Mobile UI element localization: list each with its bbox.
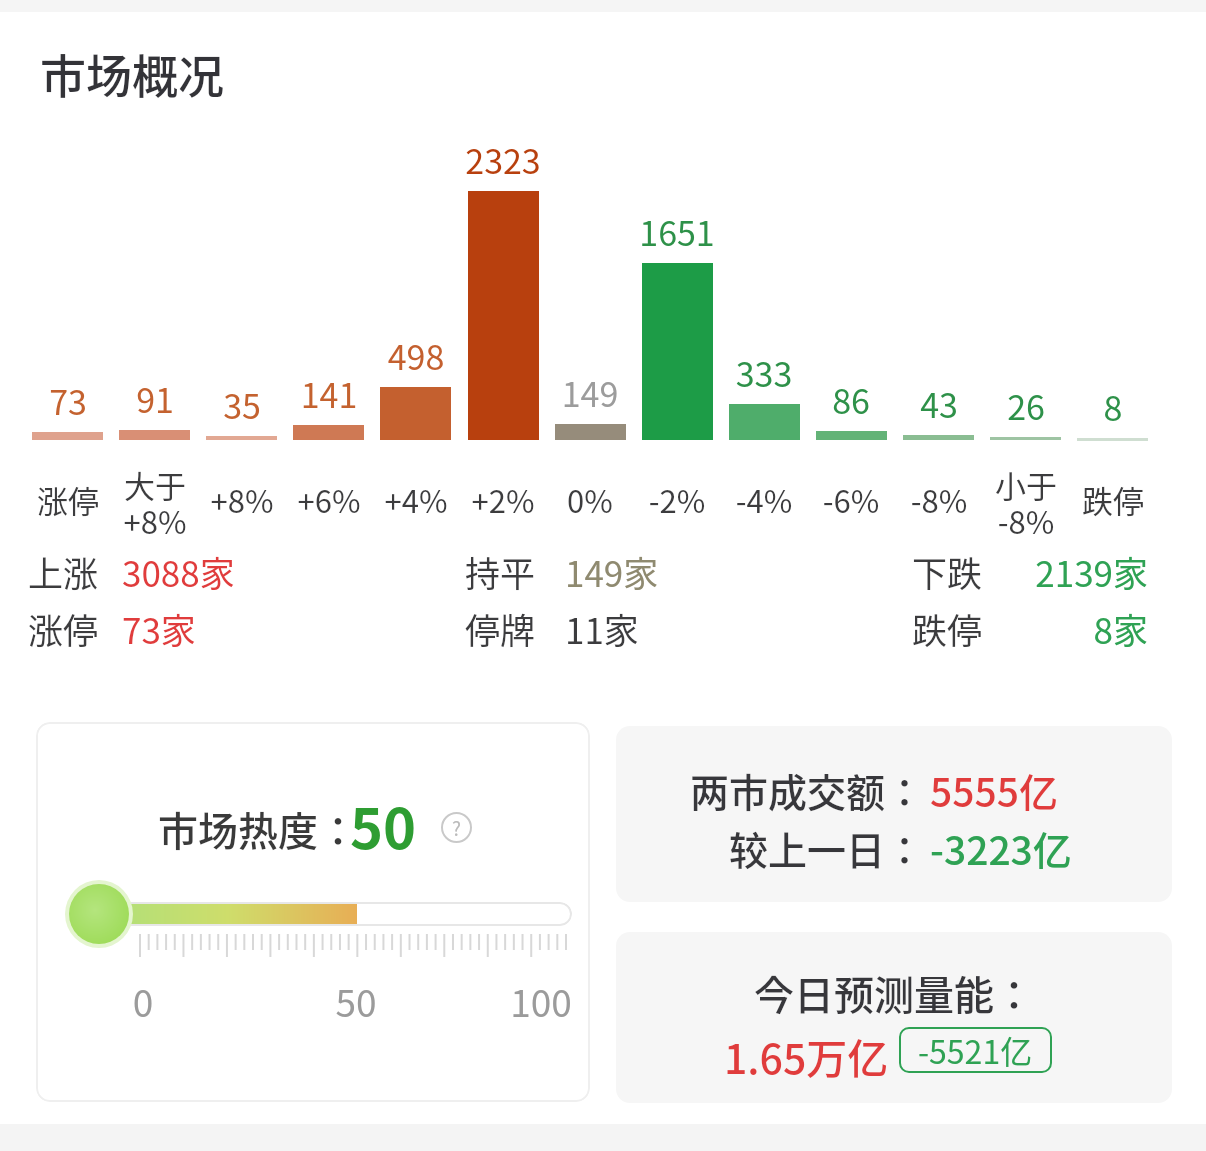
staticText: 持平 (465, 546, 536, 597)
button[interactable]: 市场热度： (36, 722, 590, 1102)
staticText: 86 (776, 375, 926, 423)
staticText: ? (452, 814, 462, 842)
staticText: -8% (879, 477, 999, 522)
staticText: -4% (704, 477, 824, 522)
button[interactable]: 今日预测量能： (616, 932, 1172, 1103)
staticText: 26 (951, 381, 1101, 429)
staticText: 0% (530, 477, 650, 522)
staticText: 市场概况 (40, 40, 224, 107)
staticText: 100 (496, 974, 586, 1028)
staticText: 较上一日： (624, 820, 924, 876)
staticText: 涨停 (8, 477, 128, 522)
staticText: 50 (350, 784, 417, 865)
staticText: 5555亿 (930, 762, 1058, 818)
staticText: 上涨 (28, 546, 99, 597)
staticText: 11家 (565, 603, 639, 654)
staticText: +8% (182, 477, 302, 522)
staticText: 73 (0, 376, 143, 424)
staticText: 43 (864, 379, 1014, 427)
staticText: 下跌 (912, 546, 983, 597)
staticText: 141 (254, 369, 404, 417)
staticText: 2323 (428, 135, 578, 183)
staticText: +2% (443, 477, 563, 522)
staticText: 小于 -8% (966, 462, 1086, 536)
staticText: 涨停 (28, 603, 99, 654)
staticText: 1651 (602, 207, 752, 255)
staticText: 两市成交额： (624, 762, 924, 818)
staticText: 50 (311, 974, 401, 1028)
button[interactable]: 两市成交额： (616, 726, 1172, 902)
staticText: +6% (269, 477, 389, 522)
staticText: 8家 (1000, 603, 1148, 654)
staticText: -6% (791, 477, 911, 522)
staticText: 跌停 (1053, 477, 1173, 522)
staticText: -3223亿 (930, 820, 1072, 876)
staticText: 1.65万亿 (724, 1026, 889, 1085)
staticText: 498 (341, 331, 491, 379)
staticText: 35 (167, 380, 317, 428)
staticText: 8 (1038, 382, 1188, 430)
staticText: 73家 (122, 603, 196, 654)
staticText: 大于 +8% (95, 462, 215, 536)
staticText: -5521亿 (918, 1027, 1033, 1073)
staticText: 149家 (565, 546, 659, 597)
staticText: 0 (98, 974, 188, 1028)
staticText: 跌停 (912, 603, 983, 654)
staticText: 333 (689, 348, 839, 396)
staticText: 91 (80, 374, 230, 422)
staticText: 市场热度： (158, 800, 358, 858)
staticText: -2% (617, 477, 737, 522)
staticText: 2139家 (1000, 546, 1148, 597)
staticText: 停牌 (465, 603, 536, 654)
staticText: +4% (356, 477, 476, 522)
staticText: 3088家 (122, 546, 235, 597)
staticText: 今日预测量能： (616, 964, 1172, 1022)
staticText: 149 (515, 368, 665, 416)
